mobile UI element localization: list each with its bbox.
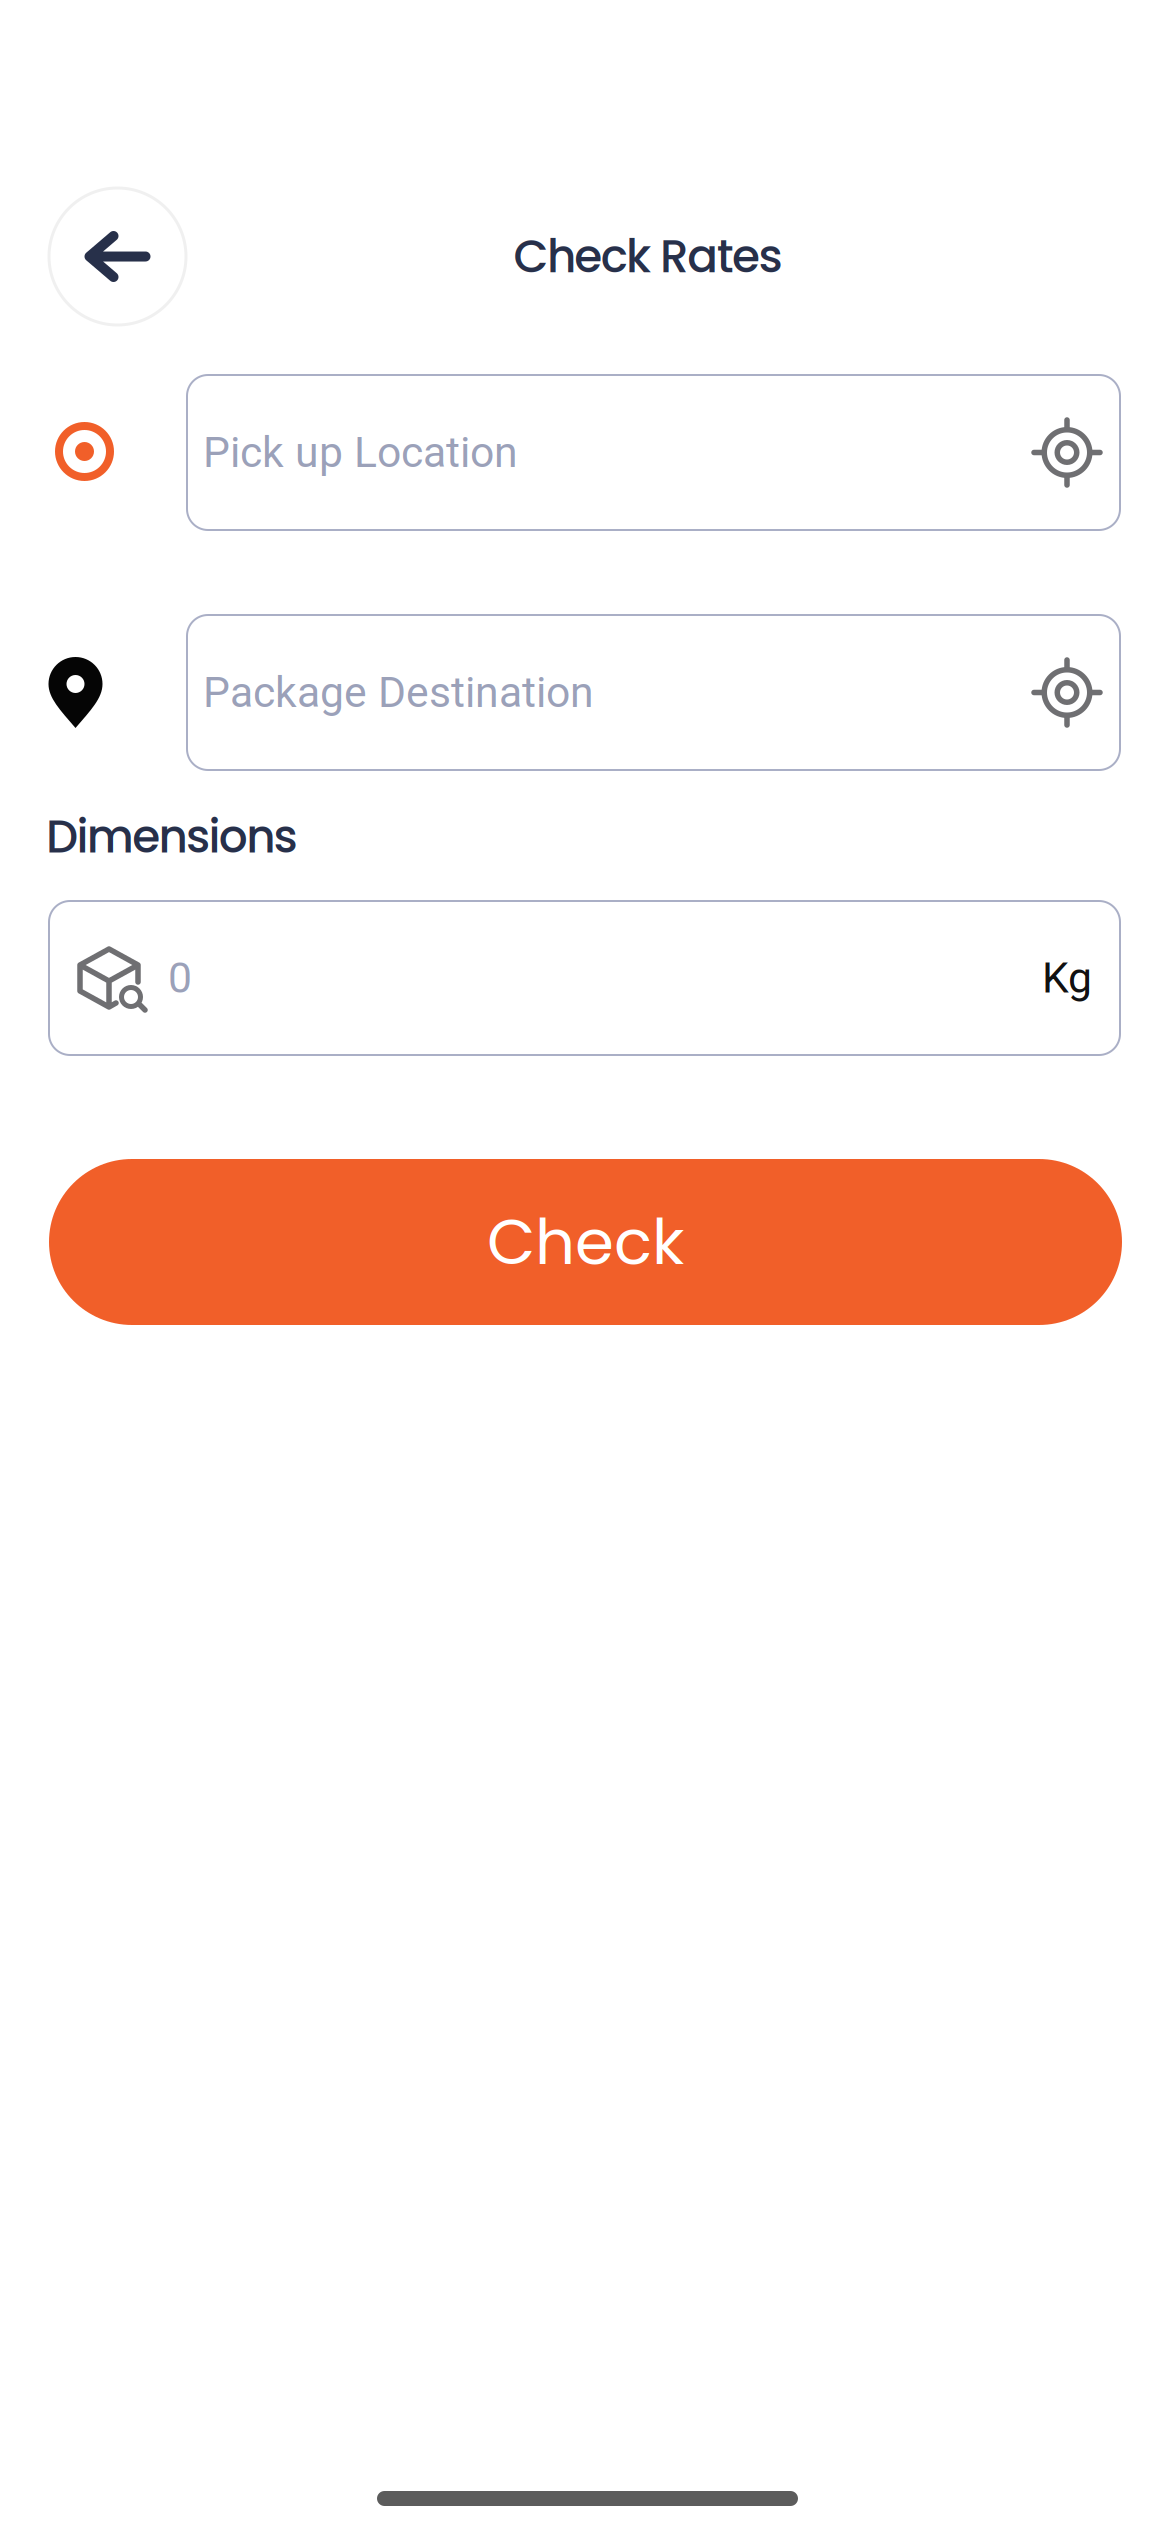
button[interactable]: Check <box>49 1159 1122 1325</box>
staticText: Package Destination <box>203 667 594 717</box>
staticText: Pick up Location <box>203 427 518 477</box>
staticText: Kg <box>1042 953 1092 1003</box>
staticText: Check <box>487 1198 684 1286</box>
staticText: 0 <box>168 953 192 1003</box>
button[interactable]: Back <box>49 188 186 325</box>
staticText: Dimensions <box>46 805 298 868</box>
staticText: Check Rates <box>513 225 782 288</box>
